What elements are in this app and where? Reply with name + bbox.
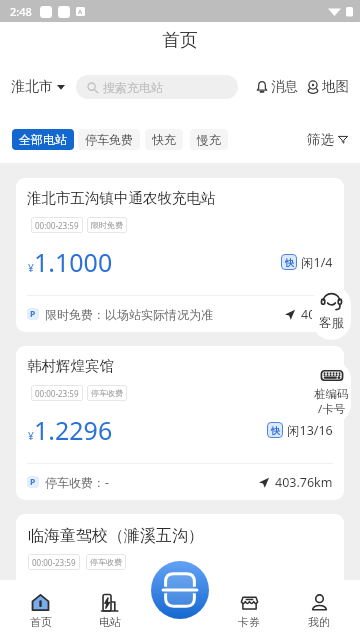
button[interactable]: 淮北市 (11, 78, 65, 96)
staticText: 客服 (319, 315, 344, 331)
staticText: 卡券 (238, 615, 260, 629)
button[interactable]: 首页 (6, 580, 75, 640)
staticText: 403.76km (275, 474, 333, 491)
staticText: 全部电站 (19, 132, 67, 147)
staticText: A (78, 8, 83, 16)
staticText: 淮北市五沟镇中通农牧充电站 (27, 189, 216, 207)
staticText: 搜索充电站 (103, 80, 163, 95)
staticText: 筛选 (307, 131, 334, 148)
button[interactable]: 慢充 (190, 129, 228, 150)
staticText: 慢充 (197, 132, 221, 147)
staticText: 403.2 (301, 306, 333, 323)
staticText: 闲13/16 (287, 422, 333, 439)
staticText: 1.1000 (34, 245, 113, 279)
staticText: 我的 (308, 615, 330, 629)
staticText: 快充 (152, 132, 176, 147)
button[interactable]: 卡券 (214, 580, 284, 640)
staticText: 闲1/4 (301, 254, 333, 271)
staticText: 首页 (162, 29, 198, 52)
staticText: 00:00-23:59 (35, 388, 79, 399)
staticText: ¥ (28, 429, 34, 443)
button[interactable]: 电站 (75, 580, 144, 640)
button[interactable]: 搜索充电站 (76, 75, 238, 99)
staticText: 韩村辉煌宾馆 (27, 357, 114, 375)
staticText: 消息 (271, 78, 298, 95)
staticText: 地图 (322, 78, 349, 95)
staticText: 快 (271, 425, 280, 436)
staticText: 1.2296 (34, 413, 113, 447)
staticText: 00:00-23:59 (35, 220, 79, 231)
staticText: 限时免费：以场站实际情况为准 (45, 307, 213, 322)
button[interactable]: 客服 (312, 285, 351, 340)
button[interactable]: 筛选 (307, 131, 348, 148)
staticText: ¥ (28, 261, 34, 275)
staticText: 停车免费 (85, 132, 133, 147)
staticText: 桩编码 (314, 387, 349, 401)
button[interactable]: 桩编码 (311, 360, 351, 424)
button[interactable]: 停车免费 (78, 129, 140, 150)
button[interactable]: 淮北市五沟镇中通农牧充电站 (16, 178, 344, 332)
button[interactable]: 我的 (284, 580, 354, 640)
button[interactable]: 快充 (145, 129, 183, 150)
button[interactable]: 临海童驾校（濉溪五沟） (16, 514, 344, 630)
button[interactable]: 扫一扫 (151, 561, 209, 619)
staticText: 2:48 (10, 4, 32, 19)
staticText: 首页 (30, 615, 52, 629)
staticText: P (30, 308, 36, 320)
staticText: 限时免费 (91, 220, 123, 230)
button[interactable]: 全部电站 (12, 129, 74, 150)
button[interactable]: 消息 (255, 78, 298, 95)
staticText: 淮北市 (11, 78, 53, 96)
staticText: 停车收费 (90, 557, 122, 567)
staticText: 临海童驾校（濉溪五沟） (28, 526, 204, 546)
staticText: /卡号 (318, 401, 346, 417)
button[interactable]: 地图 (306, 78, 349, 95)
staticText: 停车收费：- (45, 474, 109, 490)
staticText: P (30, 476, 36, 488)
staticText: 00:00-23:59 (32, 557, 76, 568)
button[interactable]: 韩村辉煌宾馆 (16, 346, 344, 500)
staticText: 停车收费 (91, 388, 123, 398)
staticText: 快 (285, 257, 294, 268)
staticText: 电站 (99, 615, 121, 629)
